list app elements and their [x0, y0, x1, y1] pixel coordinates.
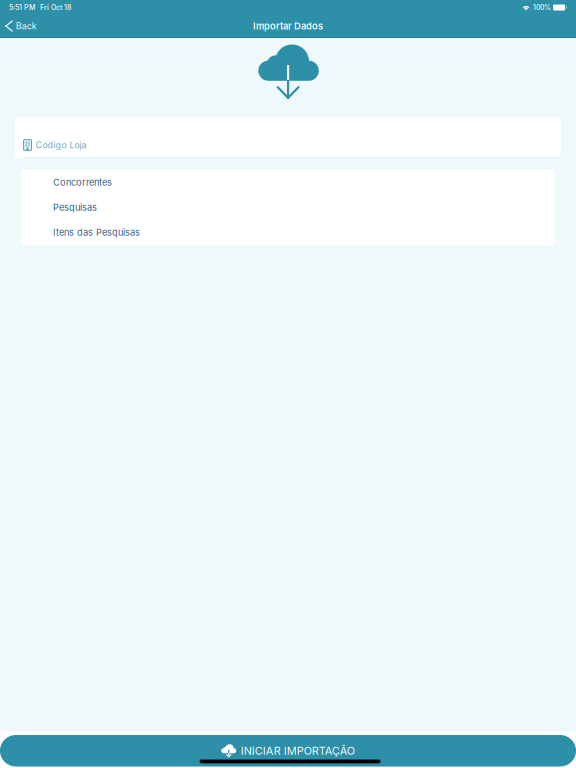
- button[interactable]: Itens das Pesquisas: [21, 220, 555, 245]
- button[interactable]: INICIAR IMPORTAÇÃO: [0, 735, 576, 766]
- staticText: 100%: [533, 3, 551, 12]
- staticText: Concorrentes: [53, 177, 112, 188]
- staticText: Importar Dados: [253, 20, 323, 32]
- button[interactable]: Back: [0, 15, 45, 37]
- button[interactable]: Concorrentes: [21, 170, 555, 195]
- staticText: Itens das Pesquisas: [53, 227, 140, 238]
- button[interactable]: Pesquisas: [21, 195, 555, 220]
- staticText: Pesquisas: [53, 202, 97, 213]
- button[interactable]: Código Loja: [15, 117, 561, 158]
- staticText: Back: [16, 20, 37, 31]
- staticText: 5:51 PM: [9, 3, 35, 12]
- staticText: Código Loja: [35, 139, 86, 150]
- staticText: INICIAR IMPORTAÇÃO: [241, 744, 355, 757]
- staticText: Fri Oct 18: [40, 3, 71, 12]
